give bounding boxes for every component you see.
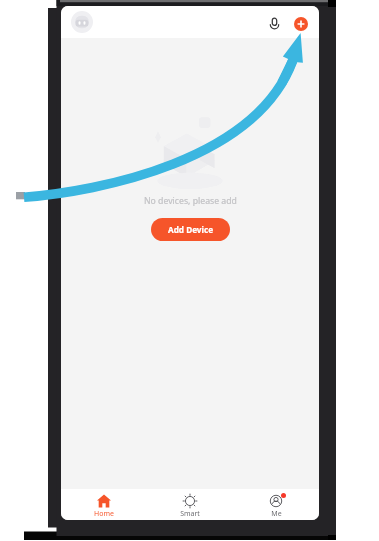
button[interactable]: Me (233, 489, 319, 520)
staticText: No devices, please add (144, 195, 237, 207)
button[interactable]: Profile (71, 11, 93, 33)
button[interactable]: Home (61, 489, 147, 520)
button[interactable]: Voice search (263, 13, 285, 35)
staticText: Add Device (168, 224, 214, 235)
button[interactable]: Add device (290, 13, 312, 35)
staticText: Smart (180, 509, 200, 519)
staticText: Home (94, 509, 114, 519)
button[interactable]: Smart (147, 489, 233, 520)
button[interactable]: Add Device (151, 218, 230, 241)
staticText: Me (271, 509, 282, 519)
